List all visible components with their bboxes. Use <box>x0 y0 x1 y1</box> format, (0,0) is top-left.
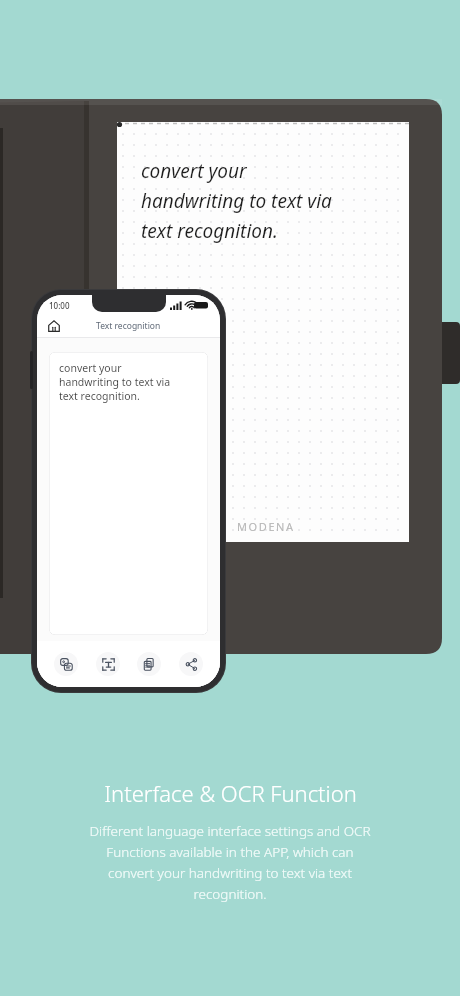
staticText: handwriting to text via <box>141 188 332 214</box>
button[interactable]: Text format <box>96 652 120 676</box>
button[interactable]: Share <box>179 652 203 676</box>
staticText: Different language interface settings an… <box>89 822 371 903</box>
button[interactable]: Recognize text <box>54 652 78 676</box>
staticText: text recognition. <box>141 218 278 244</box>
staticText: convert your handwriting to text via tex… <box>59 361 171 403</box>
button[interactable]: Home <box>45 317 63 335</box>
staticText: Interface & OCR Function <box>104 778 357 808</box>
staticText: Text recognition <box>96 320 161 332</box>
button[interactable]: Copy <box>137 652 161 676</box>
staticText: MODENA <box>237 519 295 534</box>
button[interactable]: convert your handwriting to text via tex… <box>49 352 208 635</box>
staticText: 10:00 <box>49 300 70 311</box>
staticText: convert your <box>141 158 247 184</box>
